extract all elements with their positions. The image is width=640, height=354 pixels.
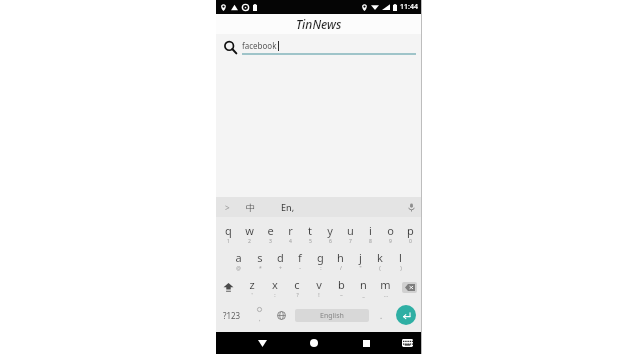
staticText: facebook <box>242 40 277 51</box>
button[interactable]: b <box>330 274 352 301</box>
button[interactable]: Enter <box>390 301 422 329</box>
button[interactable]: x <box>263 274 286 301</box>
staticText: 4 <box>289 238 292 245</box>
button[interactable]: Search <box>216 34 422 60</box>
button[interactable]: Home <box>288 332 340 354</box>
staticText: i <box>369 223 372 238</box>
staticText: 3 <box>269 238 272 245</box>
button[interactable]: r <box>280 220 300 247</box>
staticText: . <box>380 310 383 321</box>
staticText: n <box>360 277 367 292</box>
button[interactable]: j <box>350 247 370 274</box>
staticText: 0 <box>409 238 412 245</box>
button[interactable]: Recent apps <box>340 332 392 354</box>
staticText: j <box>359 250 362 265</box>
button[interactable]: o <box>380 220 400 247</box>
button[interactable]: Voice input <box>404 200 418 214</box>
button[interactable]: e <box>260 220 280 247</box>
staticText: s <box>257 250 263 265</box>
button[interactable]: Shift <box>216 274 240 301</box>
staticText: o <box>387 223 394 238</box>
staticText: k <box>377 250 383 265</box>
staticText: g <box>317 250 324 265</box>
staticText: e <box>267 223 274 238</box>
button[interactable]: v <box>308 274 330 301</box>
button[interactable]: Change language <box>270 301 292 329</box>
button[interactable]: c <box>286 274 308 301</box>
staticText: : <box>320 265 322 272</box>
staticText: TinNews <box>296 16 342 32</box>
button[interactable]: ?123 <box>216 301 248 329</box>
staticText: , <box>259 315 261 323</box>
staticText: ~ <box>340 292 343 299</box>
staticText: 中 <box>246 202 255 213</box>
staticText: " <box>359 265 362 272</box>
staticText: ?123 <box>223 310 241 321</box>
staticText: m <box>380 277 391 292</box>
staticText: v <box>316 277 322 292</box>
staticText: x <box>272 277 278 292</box>
button[interactable]: p <box>400 220 420 247</box>
staticText: z <box>249 277 255 292</box>
staticText: t <box>308 223 312 238</box>
staticText: / <box>340 265 342 272</box>
staticText: f <box>298 250 302 265</box>
staticText: d <box>277 250 284 265</box>
button[interactable]: i <box>360 220 380 247</box>
staticText: En, <box>281 201 295 213</box>
button[interactable]: z <box>240 274 263 301</box>
staticText: ) <box>400 265 402 272</box>
button[interactable]: Search <box>222 39 238 55</box>
button[interactable]: g <box>310 247 330 274</box>
staticText: 6 <box>329 238 332 245</box>
staticText: h <box>337 250 344 265</box>
button[interactable]: n <box>352 274 374 301</box>
button[interactable]: a <box>228 247 249 274</box>
button[interactable]: , <box>248 301 270 329</box>
staticText: 9 <box>389 238 392 245</box>
button[interactable]: l <box>390 247 410 274</box>
button[interactable]: m <box>374 274 396 301</box>
staticText: - <box>299 265 301 272</box>
button[interactable]: Back <box>236 332 288 354</box>
button[interactable]: t <box>300 220 320 247</box>
staticText: c <box>294 277 300 292</box>
staticText: @ <box>236 265 241 272</box>
staticText: … <box>384 292 388 299</box>
staticText: w <box>245 223 254 238</box>
staticText: l <box>399 250 402 265</box>
button[interactable]: u <box>340 220 360 247</box>
staticText: p <box>407 223 414 238</box>
staticText: 5 <box>309 238 312 245</box>
staticText: 1 <box>227 238 230 245</box>
staticText: q <box>225 223 232 238</box>
button[interactable]: En, <box>281 201 295 213</box>
staticText: 11:44 <box>400 2 418 12</box>
button[interactable]: k <box>370 247 390 274</box>
staticText: b <box>338 277 345 292</box>
button[interactable]: y <box>320 220 340 247</box>
staticText: * <box>259 265 262 272</box>
button[interactable]: d <box>270 247 290 274</box>
button[interactable]: English <box>295 309 369 322</box>
button[interactable]: q <box>218 220 239 247</box>
staticText: + <box>279 265 282 272</box>
button[interactable]: Expand <box>220 200 234 214</box>
button[interactable]: f <box>290 247 310 274</box>
staticText: 8 <box>369 238 372 245</box>
staticText: 7 <box>349 238 352 245</box>
staticText: y <box>327 223 333 238</box>
staticText: English <box>320 311 344 321</box>
staticText: _ <box>362 292 365 299</box>
staticText: ( <box>379 265 381 272</box>
button[interactable]: Backspace <box>396 274 422 301</box>
button[interactable]: w <box>239 220 260 247</box>
staticText: a <box>235 250 242 265</box>
staticText: : <box>274 292 276 299</box>
button[interactable]: Switch keyboard <box>392 332 422 354</box>
button[interactable]: h <box>330 247 350 274</box>
staticText: ! <box>318 292 320 299</box>
button[interactable]: 中 <box>246 202 255 213</box>
button[interactable]: s <box>249 247 270 274</box>
